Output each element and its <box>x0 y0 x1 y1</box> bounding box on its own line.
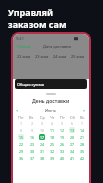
staticText: < Назад <box>15 44 31 49</box>
staticText: > <box>83 108 86 113</box>
staticText: 7 <box>81 121 84 126</box>
staticText: Общая сумма <box>17 82 44 87</box>
staticText: 17 <box>40 135 45 140</box>
staticText: 42 <box>80 156 85 161</box>
staticText: 21 <box>80 135 85 140</box>
staticText: 6 <box>71 121 74 126</box>
staticText: 35 <box>80 149 85 154</box>
staticText: 5 <box>61 121 64 126</box>
staticText: 30 <box>30 149 35 154</box>
staticText: 25 <box>50 142 55 147</box>
staticText: 1 <box>20 121 23 126</box>
staticText: День доставки <box>32 98 70 105</box>
staticText: Вс <box>80 115 85 120</box>
staticText: 3 <box>41 121 44 126</box>
staticText: 8 <box>20 128 23 133</box>
staticText: 13 <box>70 128 75 133</box>
staticText: < <box>16 108 19 113</box>
staticText: 24 <box>40 142 45 147</box>
staticText: 9:41 <box>16 36 24 41</box>
staticText: 9 <box>31 128 34 133</box>
staticText: заказом сам <box>8 18 67 30</box>
staticText: Вт <box>29 115 34 120</box>
staticText: 22 мая <box>17 54 31 59</box>
staticText: 37 <box>30 156 35 161</box>
staticText: 2 <box>31 121 34 126</box>
staticText: 27 <box>70 142 75 147</box>
staticText: Ср <box>40 115 45 120</box>
staticText: 25 мая <box>71 54 85 59</box>
staticText: 4 <box>51 121 54 126</box>
staticText: 23 <box>30 142 35 147</box>
staticText: 15 <box>19 135 24 140</box>
staticText: 22 <box>19 142 24 147</box>
staticText: Чт <box>50 115 55 120</box>
staticText: 28 <box>80 142 85 147</box>
staticText: 24 мая <box>53 54 67 59</box>
staticText: 16 <box>30 135 35 140</box>
staticText: 14 <box>80 128 85 133</box>
staticText: 32 <box>50 149 55 154</box>
staticText: 20 <box>70 135 75 140</box>
staticText: Пт <box>60 115 65 120</box>
staticText: 19 <box>60 135 65 140</box>
staticText: 23 мая <box>35 54 49 59</box>
staticText: Пн <box>18 115 24 120</box>
staticText: 31 <box>40 149 45 154</box>
staticText: 12 <box>60 128 65 133</box>
staticText: 34 <box>70 149 75 154</box>
staticText: 36 <box>19 156 24 161</box>
staticText: Сб <box>70 115 75 120</box>
staticText: 39 <box>50 156 55 161</box>
staticText: 33 <box>60 149 65 154</box>
staticText: 41 <box>70 156 75 161</box>
staticText: 26 <box>60 142 65 147</box>
staticText: 38 <box>40 156 45 161</box>
staticText: 29 <box>19 149 24 154</box>
staticText: Управляй <box>8 6 54 18</box>
staticText: 10 <box>40 128 45 133</box>
staticText: 11 <box>50 128 55 133</box>
staticText: Дата доставки <box>43 44 71 49</box>
staticText: Июнь <box>45 108 56 113</box>
staticText: 40 <box>60 156 65 161</box>
staticText: 18 <box>50 135 55 140</box>
